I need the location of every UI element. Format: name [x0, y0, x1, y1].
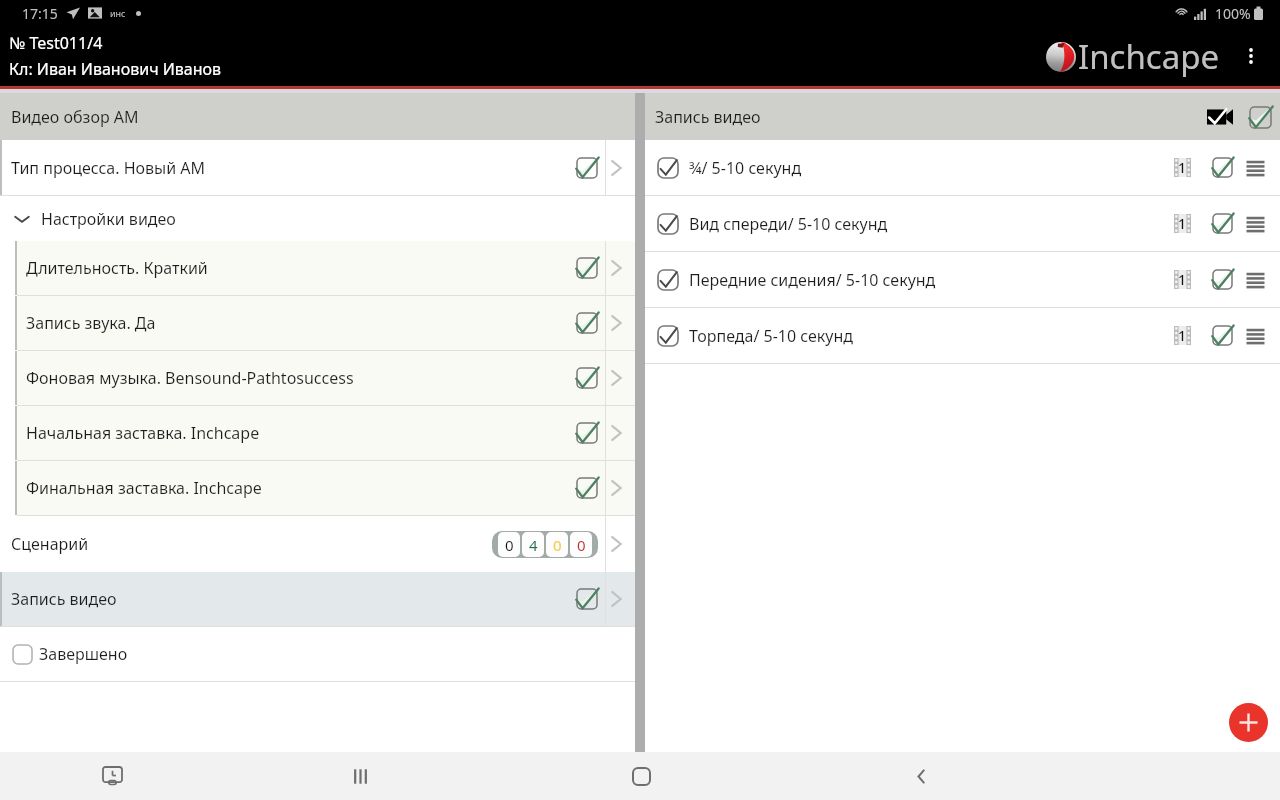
staticText: инс — [110, 7, 126, 19]
staticText: 0 — [553, 535, 562, 555]
staticText: Запись звука. Да — [26, 312, 156, 334]
button[interactable]: Clip count — [1174, 214, 1191, 233]
button[interactable]: Open details — [611, 156, 633, 180]
button[interactable]: Toggle completed — [576, 312, 598, 334]
staticText: Финальная заставка. Inchcape — [26, 477, 262, 499]
button[interactable]: Сценарий — [0, 516, 635, 572]
staticText: Торпеда/ 5-10 секунд — [689, 325, 854, 347]
staticText: Запись видео — [655, 106, 761, 128]
button[interactable]: Toggle completed — [576, 477, 598, 499]
staticText: Inchcape — [1078, 34, 1220, 79]
button[interactable]: Record all videos — [1200, 97, 1240, 137]
button[interactable]: Screenshot — [88, 752, 136, 800]
button[interactable]: Настройки видео — [0, 196, 635, 241]
button[interactable]: Reorder — [1246, 268, 1265, 292]
button[interactable]: Запись видео — [0, 572, 635, 626]
staticText: Завершено — [39, 643, 128, 665]
button[interactable]: Длительность. Краткий — [17, 241, 635, 295]
staticText: Сценарий — [11, 533, 89, 555]
button[interactable]: Check all — [1240, 97, 1280, 137]
button[interactable]: Clip count — [1174, 270, 1191, 289]
button[interactable]: Видео обзор АМ — [0, 93, 635, 140]
staticText: ¾/ 5-10 секунд — [689, 157, 802, 179]
button[interactable]: Select clip — [657, 325, 679, 347]
staticText: 100% — [1215, 4, 1251, 23]
button[interactable]: Home — [617, 752, 665, 800]
staticText: 0 — [505, 535, 514, 555]
staticText: Фоновая музыка. Bensound-Pathtosuccess — [26, 367, 354, 389]
button[interactable]: Reorder — [1246, 156, 1265, 180]
button[interactable]: Clip count — [1174, 158, 1191, 177]
button[interactable]: Mark done — [1212, 325, 1233, 346]
staticText: 1 — [1178, 214, 1187, 233]
button[interactable]: Mark done — [1212, 213, 1233, 234]
button[interactable]: Open details — [611, 421, 633, 445]
button[interactable]: Запись звука. Да — [17, 296, 635, 350]
staticText: 1 — [1178, 270, 1187, 289]
button[interactable]: Open details — [611, 587, 633, 611]
staticText: 17:15 — [22, 4, 58, 23]
button[interactable]: More options — [1232, 37, 1270, 75]
staticText: 0 — [577, 535, 586, 555]
button[interactable]: Open details — [611, 256, 633, 280]
button[interactable]: Завершено — [0, 627, 635, 681]
staticText: Настройки видео — [41, 208, 176, 230]
staticText: Длительность. Краткий — [26, 257, 208, 279]
button[interactable]: Toggle completed — [576, 588, 598, 610]
staticText: Вид спереди/ 5-10 секунд — [689, 213, 888, 235]
button[interactable]: Open details — [611, 366, 633, 390]
button[interactable]: Mark done — [1212, 157, 1233, 178]
button[interactable]: Clip count — [1174, 326, 1191, 345]
button[interactable]: Начальная заставка. Inchcape — [17, 406, 635, 460]
button[interactable]: Add — [1229, 703, 1268, 742]
staticText: № Test011/4 — [9, 32, 103, 54]
button[interactable]: Select clip — [645, 196, 1280, 251]
button[interactable]: Select clip — [645, 252, 1280, 307]
button[interactable]: Select clip — [657, 157, 679, 179]
staticText: Запись видео — [11, 588, 117, 610]
staticText: Передние сидения/ 5-10 секунд — [689, 269, 936, 291]
button[interactable]: Open details — [611, 476, 633, 500]
staticText: 1 — [1178, 158, 1187, 177]
button[interactable]: Mark done — [1212, 269, 1233, 290]
button[interactable]: Финальная заставка. Inchcape — [17, 461, 635, 515]
button[interactable]: Reorder — [1246, 212, 1265, 236]
staticText: Видео обзор АМ — [11, 106, 139, 128]
button[interactable]: Recent apps — [336, 752, 384, 800]
button[interactable]: Toggle completed — [576, 257, 598, 279]
button[interactable]: Тип процесса. Новый АМ — [0, 140, 635, 195]
button[interactable]: Toggle completed — [576, 157, 598, 179]
button[interactable]: Select clip — [645, 308, 1280, 363]
button[interactable]: Select clip — [657, 213, 679, 235]
button[interactable]: Фоновая музыка. Bensound-Pathtosuccess — [17, 351, 635, 405]
button[interactable]: Select clip — [645, 140, 1280, 195]
staticText: 1 — [1178, 326, 1187, 345]
button[interactable]: Open details — [611, 311, 633, 335]
button[interactable]: Reorder — [1246, 324, 1265, 348]
button[interactable]: Open scenario — [611, 532, 633, 556]
staticText: Кл: Иван Иванович Иванов — [9, 58, 222, 80]
button[interactable]: Toggle completed — [576, 422, 598, 444]
staticText: 4 — [529, 535, 538, 555]
button[interactable]: Select clip — [657, 269, 679, 291]
staticText: Начальная заставка. Inchcape — [26, 422, 260, 444]
button[interactable]: Back — [897, 752, 945, 800]
button[interactable]: Toggle completed — [576, 367, 598, 389]
staticText: Тип процесса. Новый АМ — [11, 157, 206, 179]
